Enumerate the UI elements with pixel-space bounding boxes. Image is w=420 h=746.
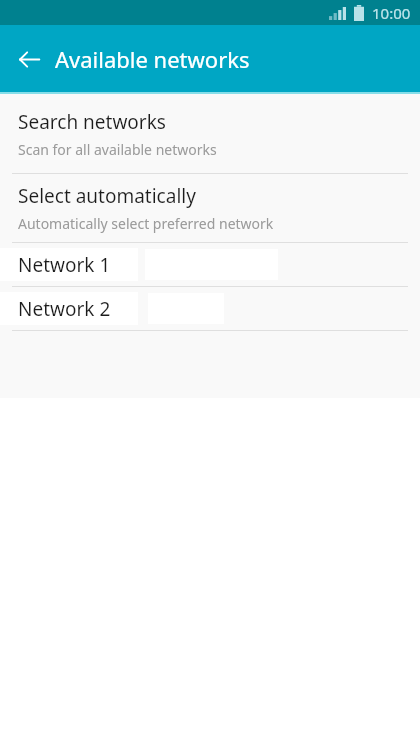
staticText: Search networks xyxy=(18,109,166,135)
button[interactable]: Search networks xyxy=(0,94,420,173)
staticText: Automatically select preferred network xyxy=(18,214,274,233)
button[interactable]: Network 1 xyxy=(0,243,420,286)
button[interactable]: Network 2 xyxy=(0,287,420,330)
staticText: Network 1 xyxy=(18,252,111,278)
staticText: Network 2 xyxy=(18,296,111,322)
staticText: Available networks xyxy=(55,44,250,74)
staticText: 10:00 xyxy=(372,3,411,23)
button[interactable]: Back xyxy=(11,41,47,77)
staticText: Select automatically xyxy=(18,183,196,209)
button[interactable]: Select automatically xyxy=(0,174,420,242)
staticText: Scan for all available networks xyxy=(18,140,217,159)
